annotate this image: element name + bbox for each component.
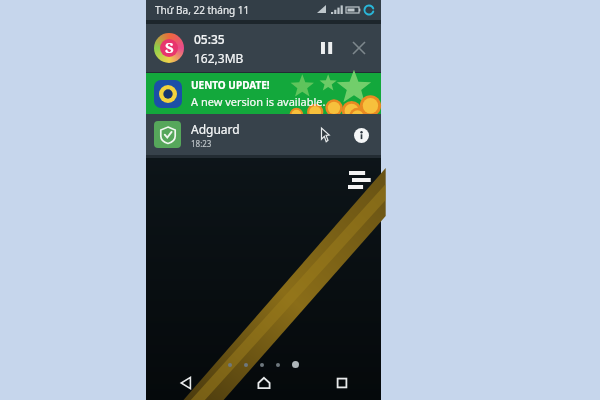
- button[interactable]: UENTO UPDATE!: [146, 73, 381, 114]
- staticText: 162,3MB: [194, 50, 244, 66]
- staticText: Thứ Ba, 22 tháng 11: [155, 3, 250, 17]
- button[interactable]: Widget: [346, 168, 372, 190]
- staticText: 18:23: [191, 138, 212, 149]
- staticText: A new version is available.: [191, 94, 326, 109]
- button[interactable]: S: [146, 24, 381, 72]
- button[interactable]: Back: [146, 366, 225, 400]
- button[interactable]: Pause: [313, 34, 341, 62]
- staticText: Adguard: [191, 121, 240, 137]
- staticText: 05:35: [194, 31, 225, 47]
- button[interactable]: Adguard: [146, 114, 381, 155]
- staticText: S: [165, 37, 174, 57]
- button[interactable]: Info: [349, 123, 373, 147]
- button[interactable]: Recents: [303, 366, 381, 400]
- button[interactable]: Home: [225, 366, 303, 400]
- button[interactable]: Dismiss: [345, 34, 373, 62]
- staticText: UENTO UPDATE!: [191, 78, 270, 92]
